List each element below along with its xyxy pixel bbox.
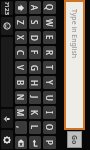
button[interactable]: U [43, 91, 56, 104]
button[interactable]: N [15, 91, 27, 104]
staticText: H [29, 80, 40, 86]
button[interactable]: ?123 [1, 1, 13, 15]
button[interactable]: P [43, 136, 56, 149]
button[interactable]: R [43, 46, 56, 59]
button[interactable]: H [29, 76, 41, 89]
button[interactable]: V [15, 61, 27, 74]
staticText: D [29, 35, 40, 41]
button[interactable]: Z [15, 16, 27, 29]
staticText: X [15, 35, 26, 40]
staticText: I [44, 111, 55, 114]
staticText: Type in English [69, 9, 79, 59]
staticText: U [44, 95, 55, 101]
button[interactable]: Emoji [1, 17, 13, 35]
button[interactable]: J [29, 91, 41, 104]
staticText: E [44, 35, 55, 40]
staticText: Z [15, 20, 26, 25]
button[interactable]: A [29, 1, 41, 14]
button[interactable]: Backspace [15, 136, 27, 149]
button[interactable]: Go [68, 132, 81, 147]
button[interactable]: T [43, 61, 56, 74]
button[interactable]: Q [43, 1, 56, 14]
staticText: L [29, 125, 40, 130]
staticText: Y [44, 80, 55, 85]
button[interactable]: F [29, 46, 41, 59]
button[interactable]: E [43, 31, 56, 44]
button[interactable]: C [15, 46, 27, 59]
button[interactable]: , [15, 121, 27, 134]
button[interactable]: B [15, 76, 27, 89]
staticText: B [15, 80, 26, 86]
staticText: A [29, 5, 40, 11]
button[interactable]: Enter [29, 136, 41, 149]
staticText: N [15, 94, 26, 101]
button[interactable]: Voice input [1, 109, 13, 128]
button[interactable]: D [29, 31, 41, 44]
staticText: M [15, 109, 26, 117]
button[interactable]: Settings [1, 130, 13, 149]
button[interactable]: O [43, 121, 56, 134]
staticText: O [44, 124, 55, 131]
staticText: P [44, 140, 55, 145]
staticText: W [44, 19, 55, 27]
staticText: R [44, 50, 55, 55]
button[interactable]: G [29, 61, 41, 74]
staticText: , [15, 126, 26, 129]
button[interactable]: W [43, 16, 56, 29]
staticText: Go [69, 135, 79, 145]
button[interactable]: I [43, 106, 56, 119]
staticText: K [29, 110, 40, 115]
staticText: Q [44, 4, 55, 11]
staticText: V [15, 65, 26, 70]
button[interactable]: K [29, 106, 41, 119]
staticText: G [29, 65, 40, 71]
staticText: T [44, 65, 55, 70]
staticText: ?123 [3, 2, 11, 15]
button[interactable]: S [29, 16, 41, 29]
button[interactable]: Shift [15, 1, 27, 14]
button[interactable]: X [15, 31, 27, 44]
button[interactable]: Y [43, 76, 56, 89]
button[interactable]: Type in English [66, 2, 83, 128]
staticText: F [29, 50, 40, 55]
staticText: S [29, 20, 40, 25]
button[interactable]: L [29, 121, 41, 134]
staticText: J [29, 96, 40, 99]
staticText: C [15, 50, 26, 56]
button[interactable]: M [15, 106, 27, 119]
